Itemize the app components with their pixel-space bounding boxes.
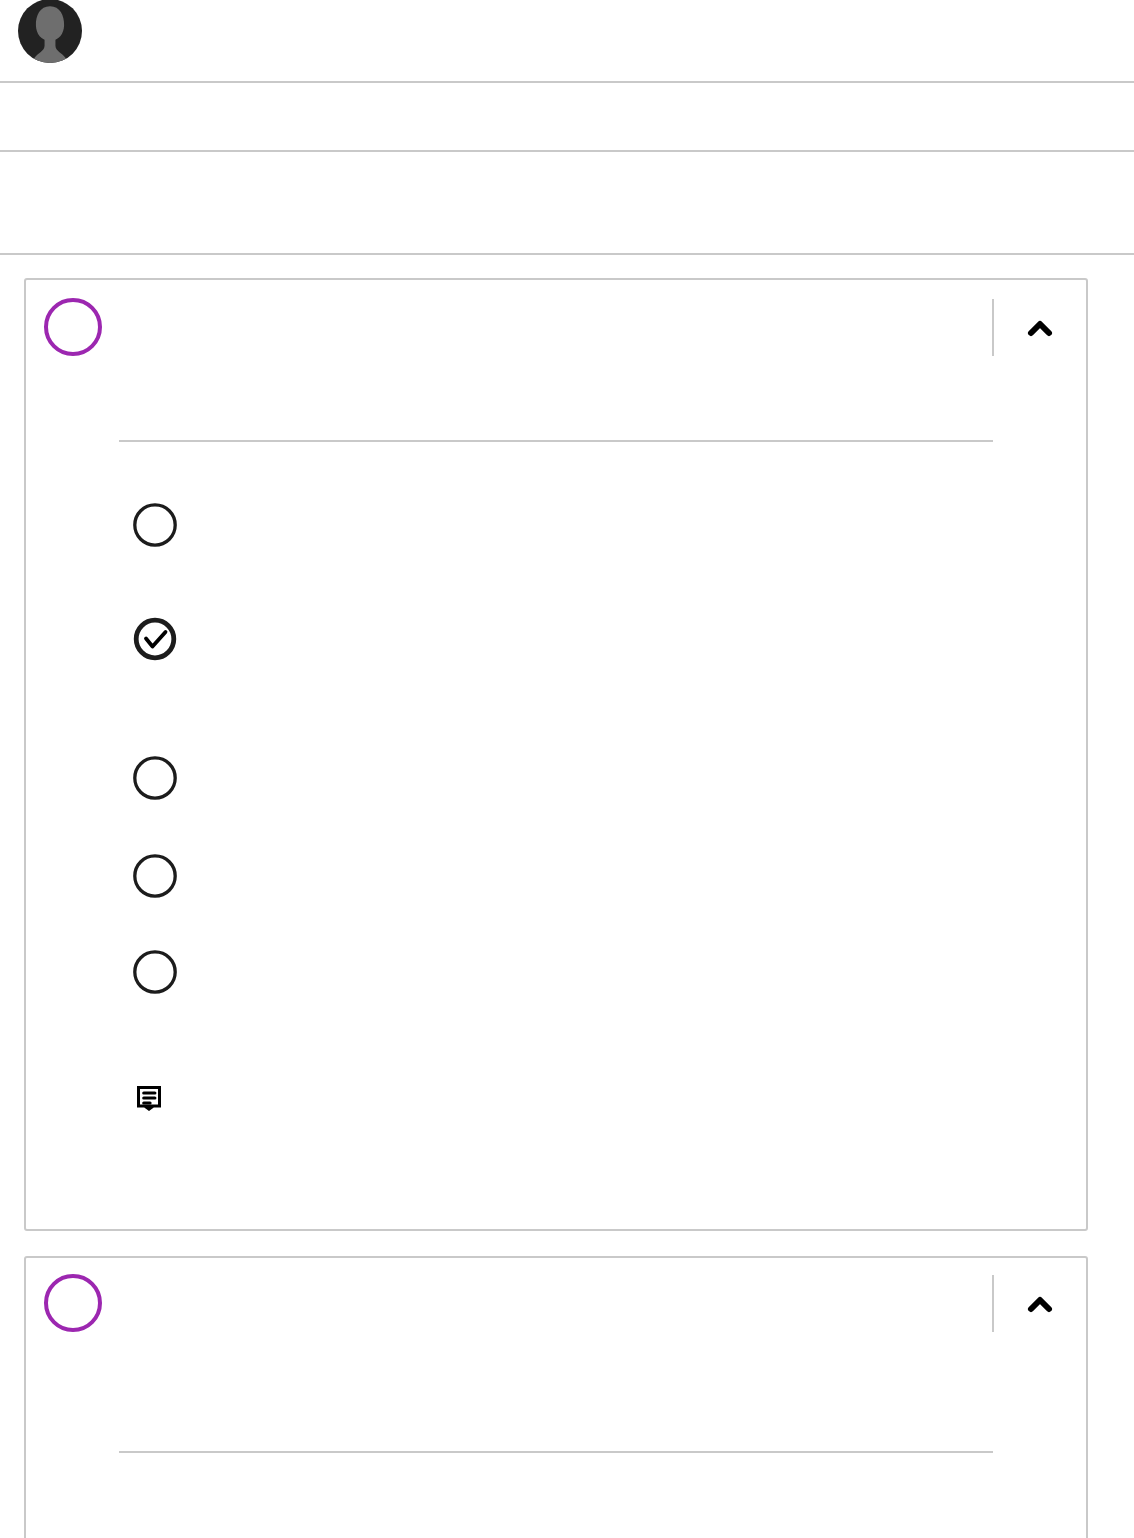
button[interactable]: Account bbox=[18, 0, 82, 63]
button[interactable]: Collapse question bbox=[1010, 297, 1070, 357]
button[interactable]: Answer option bbox=[119, 742, 1059, 814]
button[interactable]: Answer option bbox=[119, 840, 1059, 912]
button[interactable]: Answer option bbox=[119, 936, 1059, 1008]
button[interactable]: Answer option bbox=[119, 489, 1059, 561]
button[interactable]: Answer option, selected bbox=[119, 603, 1059, 675]
button[interactable]: Add comment bbox=[127, 1076, 171, 1120]
button[interactable]: Question bbox=[25, 1259, 980, 1347]
button[interactable]: Collapse question bbox=[1010, 1273, 1070, 1333]
button[interactable]: Question bbox=[25, 283, 980, 371]
